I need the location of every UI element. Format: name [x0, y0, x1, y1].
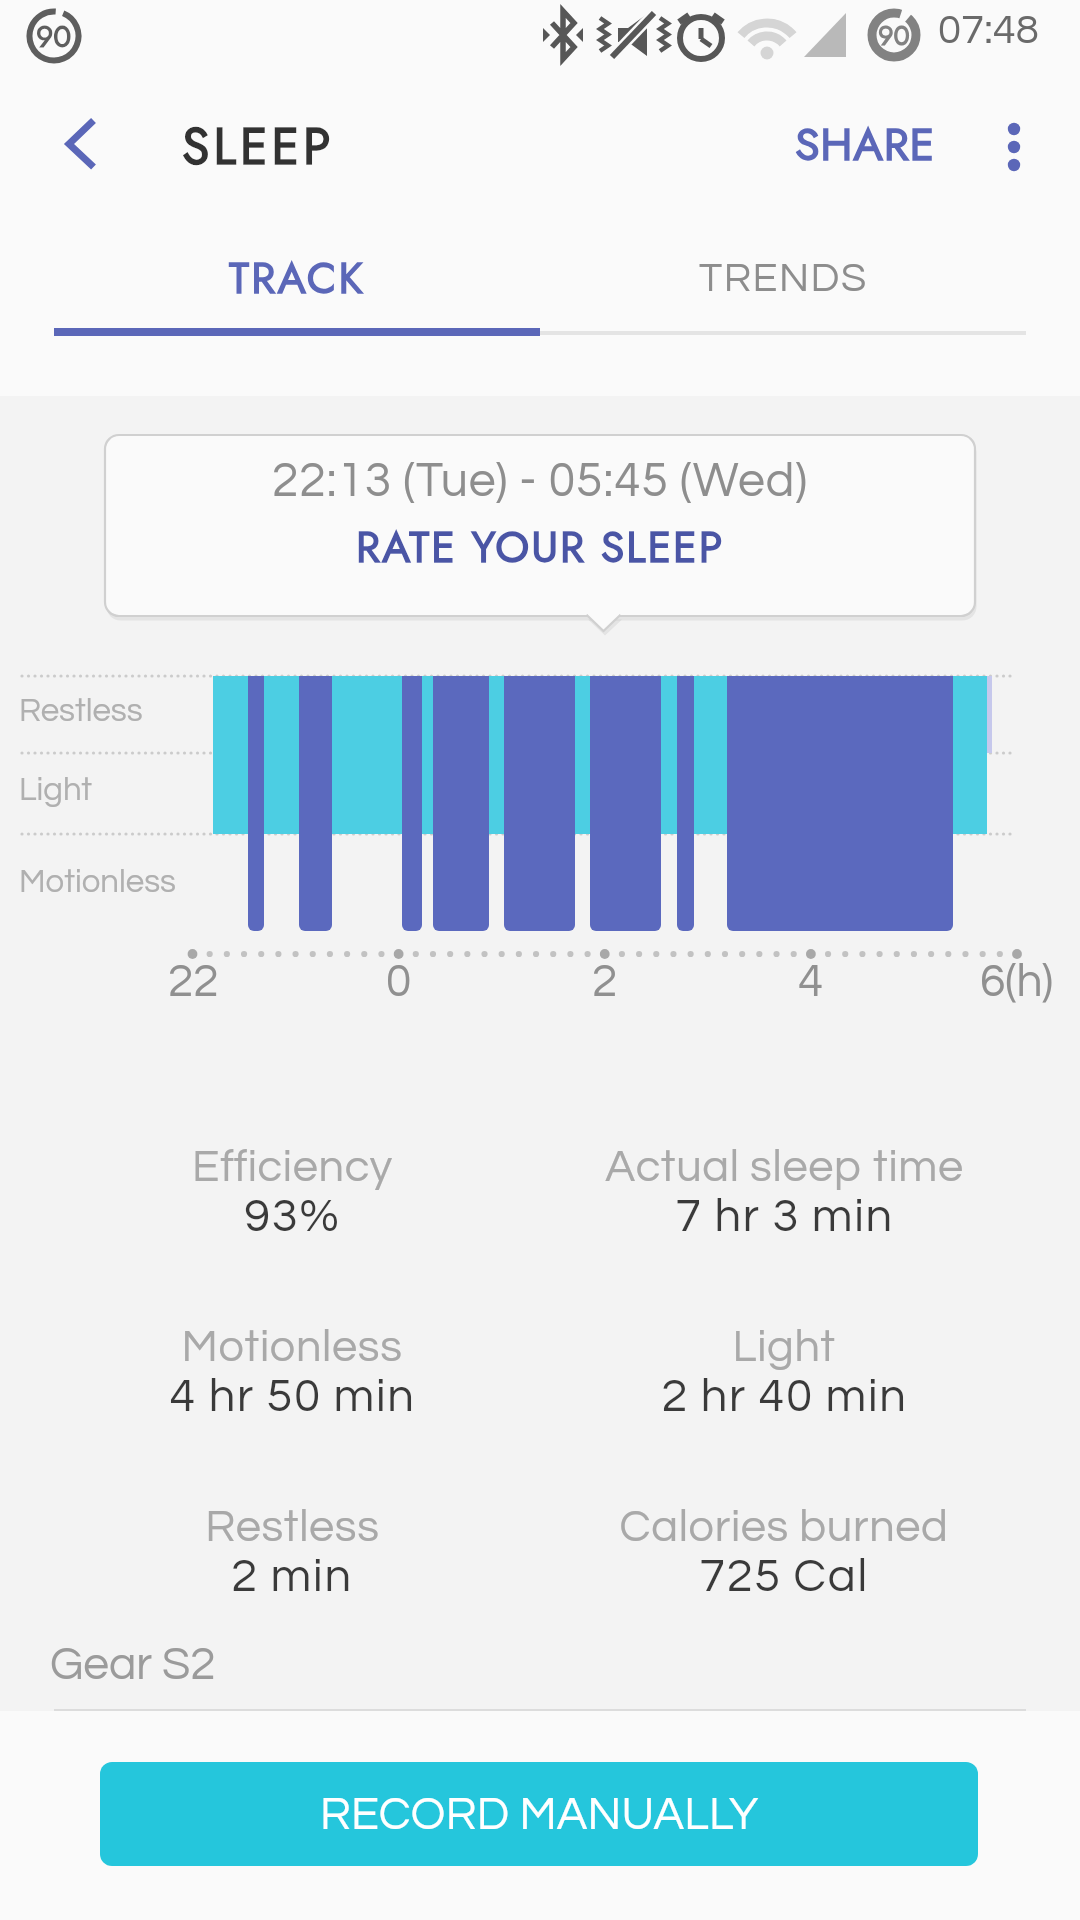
staticText: RECORD MANUALLY — [320, 1791, 759, 1838]
button[interactable]: More options — [969, 102, 1059, 192]
staticText: SLEEP — [182, 110, 335, 182]
button[interactable]: Back — [36, 88, 134, 186]
staticText: Light — [19, 773, 93, 807]
staticText: 90 — [36, 15, 72, 58]
button[interactable]: TRACK — [54, 214, 540, 342]
staticText: 22:13 (Tue) - 05:45 (Wed) — [272, 457, 809, 506]
button[interactable]: 22:13 (Tue) - 05:45 (Wed) — [105, 435, 975, 616]
staticText: 2 — [592, 958, 618, 1005]
staticText: TRACK — [229, 247, 365, 309]
button[interactable]: SHARE — [775, 99, 955, 189]
staticText: Light — [732, 1324, 836, 1370]
staticText: 90 — [878, 16, 910, 55]
staticText: 7 hr 3 min — [675, 1192, 894, 1240]
staticText: 4 — [798, 958, 824, 1005]
staticText: 6(h) — [980, 958, 1054, 1005]
staticText: Actual sleep time — [605, 1144, 964, 1190]
staticText: 93% — [244, 1192, 341, 1240]
staticText: 2 hr 40 min — [661, 1372, 908, 1420]
staticText: RATE YOUR SLEEP — [356, 516, 725, 578]
staticText: 0 — [386, 958, 412, 1005]
button[interactable]: TRENDS — [540, 214, 1026, 342]
staticText: Calories burned — [619, 1504, 949, 1550]
staticText: 07:48 — [938, 9, 1039, 52]
staticText: TRENDS — [699, 257, 868, 299]
staticText: Motionless — [19, 865, 176, 899]
staticText: Motionless — [181, 1324, 403, 1370]
staticText: 725 Cal — [699, 1552, 869, 1600]
staticText: Gear S2 — [50, 1641, 216, 1688]
staticText: SHARE — [795, 112, 935, 177]
staticText: Efficiency — [192, 1144, 393, 1190]
staticText: 22 — [168, 958, 219, 1005]
staticText: 4 hr 50 min — [169, 1372, 416, 1420]
button[interactable]: RECORD MANUALLY — [100, 1762, 978, 1866]
staticText: 2 min — [231, 1552, 353, 1600]
staticText: Restless — [205, 1504, 380, 1550]
staticText: Restless — [19, 694, 143, 728]
